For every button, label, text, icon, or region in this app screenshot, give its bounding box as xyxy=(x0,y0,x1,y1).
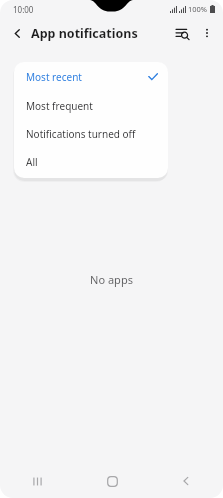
staticText: Notifications turned off xyxy=(26,127,136,141)
button[interactable]: Most frequent xyxy=(14,92,168,120)
staticText: Most recent xyxy=(26,70,82,84)
staticText: All xyxy=(26,155,38,169)
button[interactable]: Recent apps xyxy=(0,464,75,498)
button[interactable]: Notifications turned off xyxy=(14,120,168,148)
button[interactable]: Home xyxy=(75,464,149,498)
button[interactable]: All xyxy=(14,148,168,176)
button[interactable]: Back xyxy=(149,464,223,498)
staticText: App notifications xyxy=(31,25,138,42)
button[interactable]: Back xyxy=(5,21,29,45)
staticText: Most frequent xyxy=(26,99,93,113)
staticText: 10:00 xyxy=(13,4,34,15)
button[interactable]: Search xyxy=(169,20,195,46)
button[interactable]: More options xyxy=(195,21,219,45)
staticText: No apps xyxy=(90,272,133,287)
staticText: 100% xyxy=(188,4,208,14)
button[interactable]: Most recent xyxy=(14,62,168,92)
